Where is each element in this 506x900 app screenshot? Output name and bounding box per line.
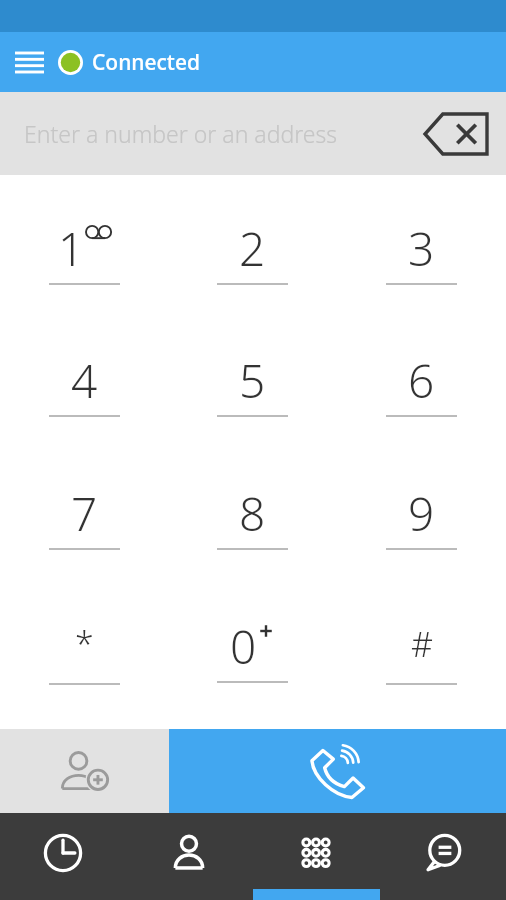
staticText: 2	[239, 217, 266, 279]
staticText: 0	[230, 615, 257, 677]
button[interactable]: Contacts	[126, 813, 252, 900]
button[interactable]: 2	[168, 185, 337, 317]
button[interactable]: Call	[169, 729, 506, 813]
button[interactable]: 0	[168, 582, 337, 715]
button[interactable]: #	[337, 582, 506, 715]
staticText: 7	[71, 482, 98, 544]
button[interactable]: Backspace	[418, 104, 494, 164]
staticText: 9	[408, 482, 435, 544]
button[interactable]: Enter a number or an address	[0, 92, 506, 175]
staticText: 3	[408, 217, 435, 279]
staticText: 8	[239, 482, 266, 544]
staticText: #	[411, 621, 433, 667]
button[interactable]: Add contact	[0, 729, 169, 813]
button[interactable]: 5	[168, 317, 337, 449]
button[interactable]: 8	[168, 449, 337, 582]
staticText: 6	[408, 349, 435, 411]
staticText: 4	[71, 349, 98, 411]
button[interactable]: Menu	[0, 33, 58, 91]
button[interactable]: 4	[0, 317, 168, 449]
button[interactable]: *	[0, 582, 168, 715]
staticText: Connected	[92, 48, 200, 77]
button[interactable]: 1	[0, 185, 168, 317]
button[interactable]: Messages	[379, 813, 506, 900]
button[interactable]: 6	[337, 317, 506, 449]
button[interactable]: 9	[337, 449, 506, 582]
button[interactable]: 3	[337, 185, 506, 317]
staticText: Enter a number or an address	[24, 118, 338, 149]
staticText: *	[75, 621, 94, 667]
staticText: 5	[239, 349, 266, 411]
button[interactable]: Recents	[0, 813, 126, 900]
staticText: 1	[58, 217, 85, 279]
button[interactable]: Dialpad	[252, 813, 379, 900]
button[interactable]: 7	[0, 449, 168, 582]
